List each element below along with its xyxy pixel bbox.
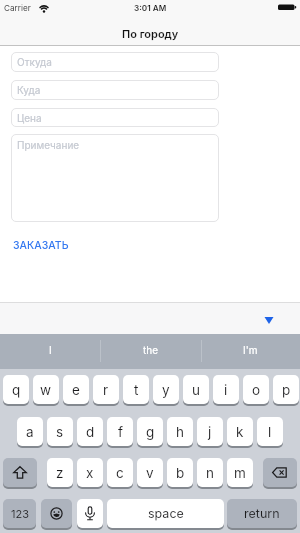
button[interactable]: k [227, 417, 253, 446]
button[interactable]: p [273, 375, 299, 404]
button[interactable]: v [137, 458, 163, 487]
staticText: i [224, 382, 228, 398]
button[interactable]: u [183, 375, 209, 404]
button[interactable] [3, 458, 37, 487]
button[interactable]: w [33, 375, 59, 404]
button[interactable]: r [93, 375, 119, 404]
button[interactable]: s [47, 417, 73, 446]
staticText: c [116, 465, 124, 481]
button[interactable]: z [47, 458, 73, 487]
button[interactable]: l [257, 417, 283, 446]
staticText: q [12, 382, 21, 398]
staticText: h [176, 424, 184, 440]
staticText: 123 [11, 507, 29, 520]
staticText: l [268, 424, 272, 440]
staticText: w [40, 382, 52, 398]
staticText: t [134, 382, 139, 398]
button[interactable]: n [197, 458, 223, 487]
staticText: I [49, 344, 52, 356]
staticText: Цена [17, 112, 42, 124]
staticText: Откуда [17, 56, 52, 68]
staticText: x [86, 465, 94, 481]
button[interactable]: a [17, 417, 43, 446]
staticText: b [176, 465, 185, 481]
staticText: r [103, 382, 109, 398]
button[interactable] [263, 458, 297, 487]
staticText: Carrier [4, 3, 31, 13]
button[interactable]: ЗАКАЗАТЬ [13, 239, 69, 252]
button[interactable] [41, 499, 72, 528]
button[interactable] [77, 499, 103, 528]
button[interactable]: Откуда [11, 52, 219, 72]
staticText: u [192, 382, 200, 398]
staticText: o [252, 382, 261, 398]
staticText: the [143, 344, 159, 356]
button[interactable]: m [227, 458, 253, 487]
staticText: Примечание [17, 139, 80, 151]
staticText: m [234, 465, 246, 481]
staticText: z [56, 465, 64, 481]
button[interactable]: e [63, 375, 89, 404]
staticText: f [118, 424, 123, 440]
staticText: return [244, 506, 280, 521]
button[interactable]: space [107, 499, 224, 528]
staticText: p [282, 382, 291, 398]
button[interactable]: b [167, 458, 193, 487]
button[interactable]: i [213, 375, 239, 404]
button[interactable]: the [100, 334, 201, 365]
button[interactable]: f [107, 417, 133, 446]
staticText: I'm [243, 344, 258, 356]
button[interactable]: d [77, 417, 103, 446]
staticText: j [208, 424, 212, 440]
button[interactable]: Куда [11, 80, 219, 100]
staticText: s [56, 424, 64, 440]
button[interactable]: h [167, 417, 193, 446]
button[interactable]: c [107, 458, 133, 487]
button[interactable] [255, 306, 283, 332]
staticText: ЗАКАЗАТЬ [13, 239, 69, 252]
button[interactable]: y [153, 375, 179, 404]
staticText: 3:01 AM [134, 3, 167, 13]
button[interactable]: I [0, 334, 100, 365]
button[interactable]: j [197, 417, 223, 446]
button[interactable]: 123 [3, 499, 36, 528]
staticText: space [148, 506, 184, 521]
staticText: a [26, 424, 34, 440]
button[interactable]: t [123, 375, 149, 404]
button[interactable]: I'm [201, 334, 300, 365]
button[interactable]: g [137, 417, 163, 446]
staticText: e [72, 382, 80, 398]
button[interactable]: q [3, 375, 29, 404]
staticText: g [146, 424, 155, 440]
staticText: k [236, 424, 244, 440]
staticText: v [146, 465, 154, 481]
staticText: Куда [17, 84, 41, 96]
staticText: n [206, 465, 214, 481]
button[interactable]: return [227, 499, 297, 528]
button[interactable]: x [77, 458, 103, 487]
staticText: d [86, 424, 95, 440]
staticText: По городу [122, 27, 179, 40]
button[interactable]: Примечание [11, 134, 219, 222]
button[interactable]: o [243, 375, 269, 404]
button[interactable]: Цена [11, 108, 219, 127]
staticText: y [162, 382, 170, 398]
